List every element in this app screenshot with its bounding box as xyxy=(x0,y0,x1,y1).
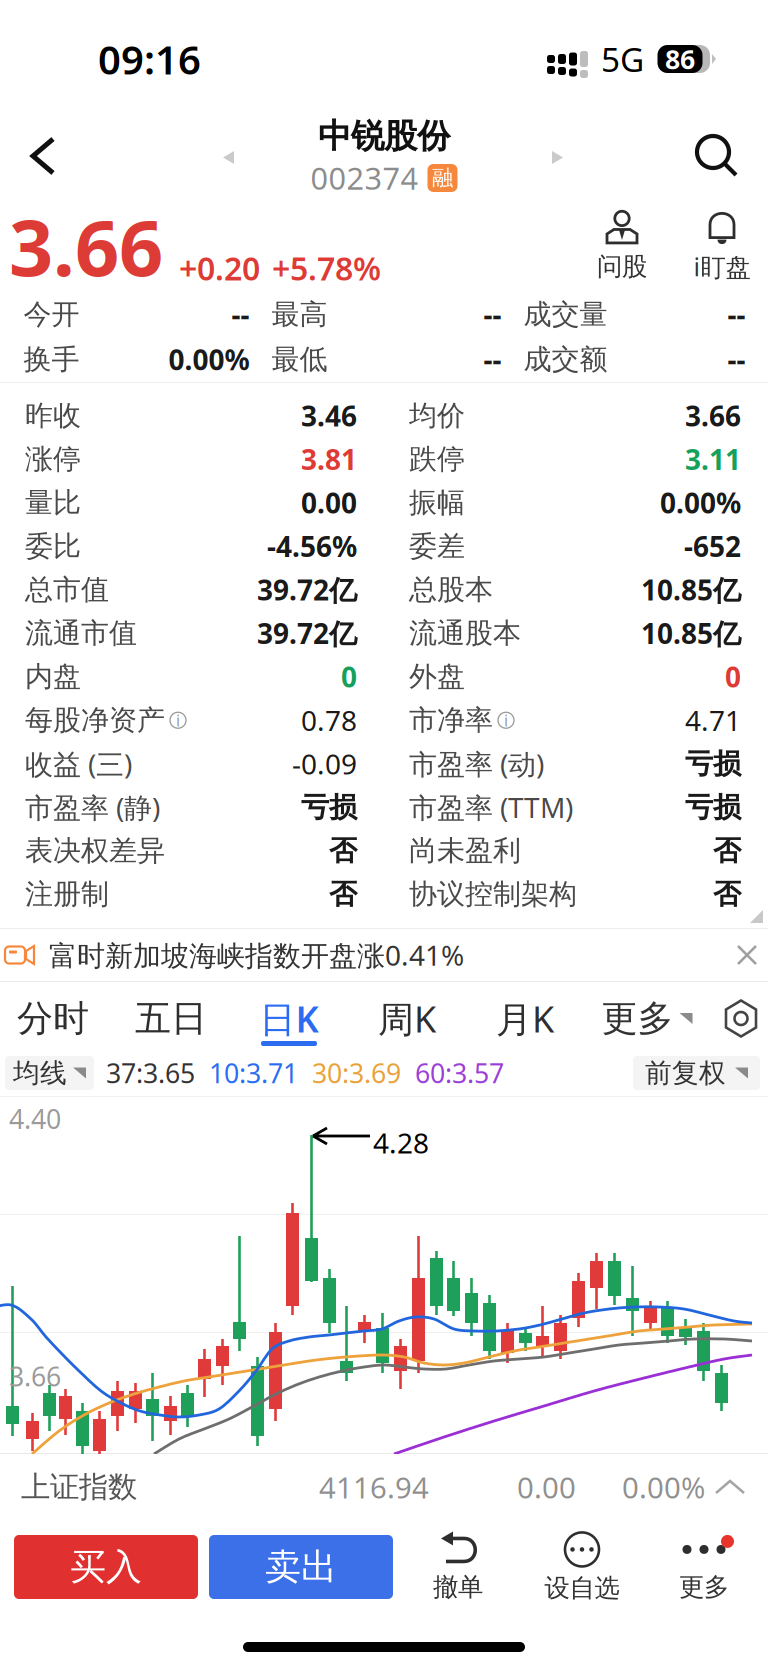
staticText: 更多 xyxy=(679,1571,729,1602)
staticText: 分时 xyxy=(17,996,89,1041)
staticText: -- xyxy=(231,296,249,333)
button[interactable]: i盯盘 xyxy=(676,209,768,283)
button[interactable]: Search xyxy=(682,122,752,192)
staticText: 否 xyxy=(713,834,741,868)
staticText: 总股本 xyxy=(409,573,493,607)
staticText: 流通股本 xyxy=(409,616,521,650)
staticText: 跌停 xyxy=(409,442,465,476)
staticText: 协议控制架构 xyxy=(409,877,577,911)
staticText: 成交量 xyxy=(523,297,607,332)
staticText: 市盈率 (动) xyxy=(409,745,544,782)
button[interactable]: Close banner xyxy=(728,936,766,974)
button[interactable]: 月K xyxy=(466,982,584,1055)
staticText: 0.00 xyxy=(517,1467,576,1506)
staticText: 月K xyxy=(496,995,554,1042)
staticText: -- xyxy=(483,341,501,378)
staticText: i xyxy=(176,710,180,731)
staticText: 最低 xyxy=(271,342,327,377)
button[interactable]: 买入 xyxy=(14,1535,198,1599)
staticText: 成交额 xyxy=(523,342,607,377)
staticText: 0.00 xyxy=(301,484,357,521)
staticText: 30:3.69 xyxy=(312,1055,401,1091)
staticText: 3.66 xyxy=(685,397,741,434)
staticText: 4.40 xyxy=(9,1101,61,1136)
staticText: 今开 xyxy=(23,297,79,332)
staticText: 4.71 xyxy=(685,702,741,739)
staticText: -4.56% xyxy=(267,528,357,565)
staticText: 亏损 xyxy=(685,790,741,824)
button[interactable]: 日K xyxy=(230,982,348,1055)
staticText: 3.11 xyxy=(685,441,741,478)
button[interactable]: Chart settings xyxy=(718,995,764,1041)
staticText: 富时新加坡海峡指数开盘涨0.41% xyxy=(49,936,464,974)
staticText: 市盈率 (TTM) xyxy=(409,789,573,826)
button[interactable]: 更多 xyxy=(654,1531,754,1602)
staticText: 委差 xyxy=(409,529,465,563)
staticText: 买入 xyxy=(70,1545,142,1589)
staticText: 换手 xyxy=(23,342,79,377)
staticText: +0.20 xyxy=(179,247,260,289)
staticText: 002374 xyxy=(310,158,418,198)
staticText: 0.78 xyxy=(301,702,357,739)
button[interactable]: 问股 xyxy=(576,210,668,282)
staticText: 4116.94 xyxy=(319,1467,429,1506)
staticText: 3.46 xyxy=(301,397,357,434)
button[interactable]: 五日 xyxy=(112,982,230,1055)
staticText: 最高 xyxy=(271,297,327,332)
staticText: 总市值 xyxy=(25,573,109,607)
staticText: 3.66 xyxy=(9,1358,61,1394)
staticText: 撤单 xyxy=(433,1571,483,1602)
staticText: 表决权差异 xyxy=(25,834,165,868)
staticText: 振幅 xyxy=(409,486,465,520)
staticText: 4.28 xyxy=(373,1124,429,1161)
staticText: -- xyxy=(483,296,501,333)
staticText: 5G xyxy=(601,37,644,81)
staticText: i xyxy=(504,710,508,731)
staticText: 收益 (三) xyxy=(25,745,132,782)
staticText: 10.85亿 xyxy=(641,615,741,652)
staticText: 3.66 xyxy=(9,195,163,297)
staticText: 每股净资产 xyxy=(25,703,165,737)
staticText: 问股 xyxy=(597,251,647,282)
staticText: 内盘 xyxy=(25,660,81,694)
staticText: -- xyxy=(727,296,745,333)
button[interactable]: 卖出 xyxy=(209,1535,393,1599)
staticText: 60:3.57 xyxy=(415,1055,504,1091)
staticText: 上证指数 xyxy=(21,1469,137,1505)
staticText: 0.00% xyxy=(622,1467,705,1506)
staticText: 否 xyxy=(329,877,357,911)
staticText: 0.00% xyxy=(660,484,741,521)
button[interactable]: Expand index xyxy=(713,1474,747,1500)
staticText: 尚未盈利 xyxy=(409,834,521,868)
button[interactable]: 撤单 xyxy=(406,1531,510,1602)
button[interactable]: Back xyxy=(8,119,84,195)
staticText: 涨停 xyxy=(25,442,81,476)
staticText: 市净率 xyxy=(409,703,493,737)
button[interactable]: 均线 xyxy=(5,1056,94,1090)
staticText: 39.72亿 xyxy=(257,571,357,608)
button[interactable]: 周K xyxy=(348,982,466,1055)
staticText: 五日 xyxy=(135,996,207,1041)
staticText: 前复权 xyxy=(645,1057,726,1089)
staticText: 卖出 xyxy=(265,1545,337,1589)
button[interactable]: 前复权 xyxy=(633,1056,760,1090)
staticText: 昨收 xyxy=(25,399,81,433)
staticText: 否 xyxy=(329,834,357,868)
staticText: 中锐股份 xyxy=(318,116,450,157)
staticText: 设自选 xyxy=(544,1572,619,1603)
staticText: 流通市值 xyxy=(25,616,137,650)
staticText: 外盘 xyxy=(409,660,465,694)
staticText: 39.72亿 xyxy=(257,615,357,652)
button[interactable]: 更多 xyxy=(584,982,710,1055)
staticText: 亏损 xyxy=(301,790,357,824)
staticText: +5.78% xyxy=(272,247,381,289)
staticText: -0.09 xyxy=(292,745,357,782)
staticText: 周K xyxy=(378,995,436,1042)
staticText: 0 xyxy=(341,658,357,695)
staticText: 日K xyxy=(259,995,318,1042)
staticText: 均价 xyxy=(409,399,465,433)
staticText: 3.81 xyxy=(301,441,357,478)
button[interactable]: 设自选 xyxy=(530,1530,634,1603)
button[interactable]: 分时 xyxy=(0,982,112,1055)
staticText: 10:3.71 xyxy=(209,1055,298,1091)
